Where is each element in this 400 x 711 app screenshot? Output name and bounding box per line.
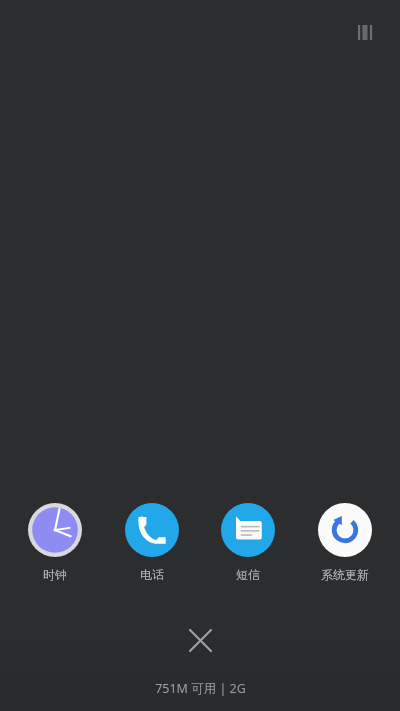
button[interactable]: 系统更新	[303, 501, 387, 584]
button[interactable]: Close	[176, 616, 224, 664]
button[interactable]: 短信	[206, 501, 290, 584]
button[interactable]: Window layout	[353, 19, 379, 45]
staticText: 电话	[140, 567, 164, 582]
staticText: 系统更新	[321, 567, 369, 582]
staticText: 短信	[236, 567, 260, 582]
button[interactable]: 时钟	[13, 501, 97, 584]
staticText: 时钟	[43, 567, 67, 582]
staticText: 751M 可用 | 2G	[155, 680, 246, 697]
button[interactable]: 电话	[110, 501, 194, 584]
